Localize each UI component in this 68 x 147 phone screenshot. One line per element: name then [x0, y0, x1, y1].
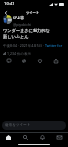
button[interactable]: 返信をツイート: [2, 121, 66, 130]
staticText: @piyokichi: [13, 22, 32, 27]
button[interactable]: Messages: [51, 133, 68, 142]
staticText: 新しいふとん: [3, 34, 29, 39]
button[interactable]: Notifications: [34, 133, 51, 142]
staticText: 返信をツイート: [5, 123, 31, 128]
staticText: 10:41: [4, 1, 15, 7]
button[interactable]: Back: [0, 8, 11, 17]
staticText: 午後8:04 · 2021年4月5日 · Twitter for iPhone: [3, 43, 67, 48]
button[interactable]: Like: [36, 57, 44, 64]
staticText: ツイート: [26, 11, 39, 15]
button[interactable]: Retweet: [20, 57, 28, 64]
staticText: 1,234 件の表示: [7, 51, 31, 56]
button[interactable]: Search: [17, 133, 34, 142]
button[interactable]: Reply: [5, 57, 13, 64]
staticText: ぴよ吉: [13, 16, 24, 21]
staticText: ワンダーまさに魅力的な: [3, 28, 50, 33]
button[interactable]: Share: [52, 57, 60, 64]
button[interactable]: Home: [0, 133, 17, 142]
